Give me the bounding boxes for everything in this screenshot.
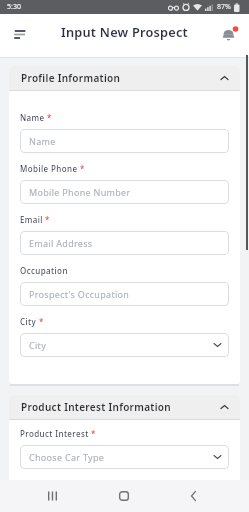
staticText: City [29,339,47,351]
button[interactable]: Product Interest Information [9,395,240,419]
staticText: Choose Car Type [29,451,105,463]
staticText: Occupation [20,265,68,276]
button[interactable] [110,482,138,510]
staticText: 5:30 [7,2,21,12]
staticText: * [80,163,85,174]
button[interactable] [179,482,207,510]
staticText: Mobile Phone [20,163,78,174]
staticText: Email [20,214,43,225]
staticText: Input New Prospect [61,23,189,40]
button[interactable]: Profile Information [9,66,240,90]
staticText: * [47,112,52,123]
button[interactable]: Email Address [20,231,229,255]
button[interactable] [8,22,32,46]
staticText: Name [29,135,56,147]
button[interactable] [219,23,241,45]
button[interactable]: Mobile Phone Number [20,180,229,204]
button[interactable] [38,482,66,510]
staticText: 87% [217,2,231,12]
staticText: Email Address [29,237,93,249]
staticText: City [20,316,37,327]
staticText: Profile Information [21,71,121,85]
staticText: Mobile Phone Number [29,186,131,198]
staticText: Product Interest Information [21,400,171,414]
staticText: * [45,214,50,225]
staticText: Prospect's Occupation [29,288,130,300]
staticText: * [39,316,44,327]
button[interactable]: Choose Car Type [20,445,229,469]
button[interactable]: Name [20,129,229,153]
staticText: Product Interest [20,428,89,439]
button[interactable]: Prospect's Occupation [20,282,229,306]
staticText: Name [20,112,45,123]
button[interactable]: City [20,333,229,357]
staticText: * [91,428,96,439]
